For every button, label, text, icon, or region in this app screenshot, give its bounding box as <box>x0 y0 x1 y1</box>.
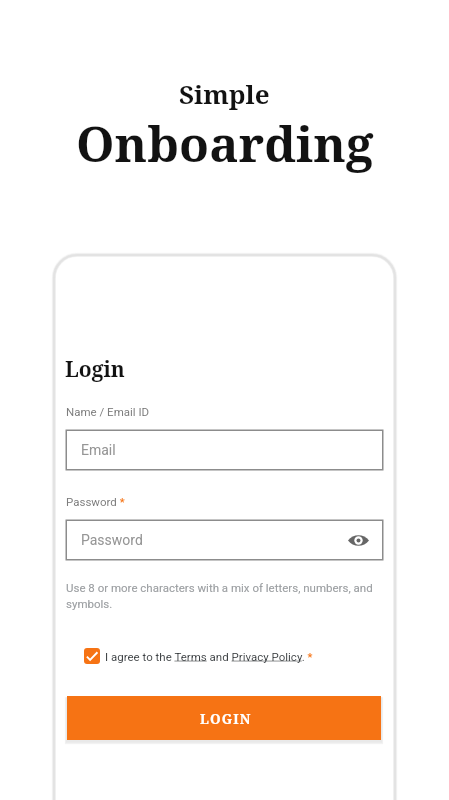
button[interactable]: Show password <box>346 528 370 552</box>
button[interactable]: LOGIN <box>67 696 381 740</box>
button[interactable]: I agree to the Terms and Privacy Policy.… <box>84 648 313 664</box>
staticText: Use 8 or more characters with a mix of l… <box>66 581 383 611</box>
staticText: Name / Email ID <box>66 405 150 418</box>
staticText: LOGIN <box>200 710 252 728</box>
staticText: Email <box>81 442 116 458</box>
button[interactable]: Email <box>66 430 383 470</box>
staticText: Login <box>65 355 125 384</box>
staticText: I agree to the Terms and Privacy Policy.… <box>105 650 313 663</box>
staticText: Password <box>81 532 143 548</box>
staticText: Simple <box>179 76 270 111</box>
staticText: Onboarding <box>76 110 374 177</box>
button[interactable]: Password <box>66 520 383 560</box>
staticText: Password * <box>66 495 125 508</box>
